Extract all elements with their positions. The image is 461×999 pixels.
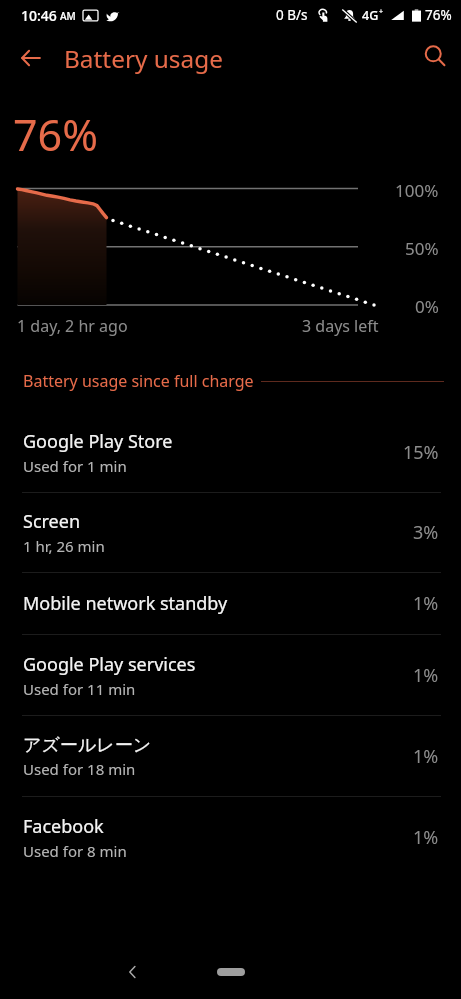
staticText: Battery usage	[64, 42, 223, 75]
staticText: 4G	[362, 7, 379, 24]
staticText: 3%	[413, 520, 439, 545]
staticText: 10:46	[21, 6, 57, 25]
button[interactable]: Search	[411, 34, 459, 82]
button[interactable]: Google Play Store	[0, 412, 461, 492]
staticText: 76%	[425, 6, 452, 24]
staticText: 100%	[395, 179, 439, 202]
staticText: アズールレーン	[23, 734, 152, 757]
staticText: Google Play Store	[23, 429, 173, 454]
staticText: 1%	[413, 663, 439, 688]
staticText: 3 days left	[302, 315, 379, 337]
staticText: Used for 18 min	[23, 759, 136, 779]
staticText: Mobile network standby	[23, 591, 228, 616]
button[interactable]: アズールレーン	[0, 716, 461, 796]
staticText: 1%	[413, 591, 439, 616]
staticText: Used for 11 min	[23, 679, 136, 699]
staticText: AM	[60, 9, 76, 23]
staticText: Screen	[23, 509, 81, 534]
button[interactable]: Google Play services	[0, 635, 461, 715]
button[interactable]: Back	[113, 952, 153, 992]
staticText: 15%	[403, 440, 439, 465]
button[interactable]: Facebook	[0, 797, 461, 877]
staticText: 1%	[413, 744, 439, 769]
button[interactable]: Home	[209, 960, 253, 984]
button[interactable]: Mobile network standby	[0, 573, 461, 634]
staticText: 1%	[413, 825, 439, 850]
staticText: Used for 8 min	[23, 841, 127, 861]
staticText: 1 hr, 26 min	[23, 536, 105, 556]
staticText: Battery usage since full charge	[23, 370, 254, 392]
staticText: 1 day, 2 hr ago	[17, 315, 128, 337]
button[interactable]: Back	[7, 34, 55, 82]
staticText: +	[379, 7, 384, 17]
staticText: Facebook	[23, 814, 104, 839]
staticText: Used for 1 min	[23, 456, 127, 476]
staticText: Google Play services	[23, 652, 196, 677]
staticText: 76%	[13, 105, 98, 164]
button[interactable]: Screen	[0, 493, 461, 572]
staticText: 50%	[405, 237, 439, 260]
staticText: 0 B/s	[276, 6, 308, 24]
staticText: 0%	[415, 295, 439, 318]
